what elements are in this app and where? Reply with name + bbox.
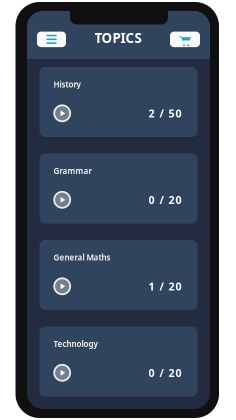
staticText: 2 / 50 (148, 106, 181, 120)
staticText: 1 / 20 (148, 279, 181, 293)
button[interactable]: Cart (170, 32, 200, 47)
staticText: History (53, 79, 80, 90)
staticText: Grammar (53, 165, 91, 176)
staticText: 0 / 20 (148, 193, 181, 207)
staticText: Technology (53, 338, 97, 349)
button[interactable]: Technology (39, 326, 197, 396)
button[interactable]: General Maths (39, 240, 197, 310)
button[interactable]: History (39, 67, 197, 137)
staticText: General Maths (53, 252, 110, 263)
staticText: 0 / 20 (148, 366, 181, 380)
button[interactable]: Menu (37, 32, 66, 47)
staticText: TOPICS (94, 29, 141, 47)
button[interactable]: Grammar (39, 153, 197, 223)
